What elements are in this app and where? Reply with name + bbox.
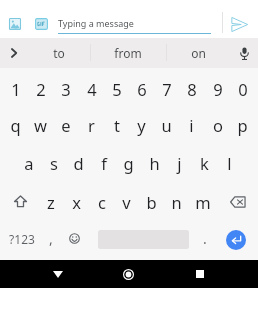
button[interactable]: w [28, 105, 53, 144]
button[interactable]: 5 [104, 69, 129, 108]
staticText: h [149, 152, 160, 174]
button[interactable]: e [53, 105, 78, 144]
staticText: i [189, 114, 194, 136]
staticText: t [114, 114, 120, 136]
button[interactable]: g [116, 143, 141, 182]
button[interactable]: v [114, 182, 139, 221]
button[interactable]: to [27, 38, 90, 68]
staticText: g [123, 152, 134, 174]
staticText: u [161, 114, 172, 136]
staticText: to [53, 45, 65, 61]
staticText: m [195, 191, 211, 213]
staticText: 4 [87, 78, 97, 100]
staticText: 3 [61, 78, 71, 100]
staticText: s [50, 152, 58, 174]
staticText: 9 [213, 78, 223, 100]
staticText: d [73, 152, 84, 174]
button[interactable]: Insert image [5, 14, 25, 34]
staticText: f [101, 152, 107, 174]
staticText: Typing a message [58, 17, 134, 29]
button[interactable]: 8 [179, 69, 204, 108]
button[interactable]: f [91, 143, 116, 182]
button[interactable]: h [142, 143, 167, 182]
staticText: r [88, 114, 95, 136]
button[interactable]: Typing a message [58, 8, 211, 34]
button[interactable]: Insert GIF [31, 14, 51, 34]
button[interactable]: u [154, 105, 179, 144]
button[interactable]: n [164, 182, 189, 221]
button[interactable]: x [64, 182, 89, 221]
staticText: . [203, 229, 207, 248]
button[interactable]: Voice input [231, 38, 258, 68]
button[interactable]: Home [114, 260, 143, 288]
staticText: w [34, 114, 47, 136]
staticText: 2 [36, 78, 46, 100]
staticText: y [137, 114, 146, 136]
button[interactable]: Shift [0, 182, 40, 221]
staticText: c [98, 191, 106, 213]
button[interactable]: k [192, 143, 217, 182]
button[interactable]: , [42, 219, 59, 258]
staticText: from [114, 45, 142, 61]
button[interactable]: r [79, 105, 104, 144]
staticText: x [72, 191, 81, 213]
button[interactable]: Emoji [62, 219, 86, 258]
staticText: l [227, 152, 232, 174]
staticText: e [61, 114, 71, 136]
button[interactable]: 0 [230, 69, 255, 108]
staticText: , [49, 229, 53, 248]
button[interactable]: 2 [28, 69, 53, 108]
button[interactable]: b [139, 182, 164, 221]
button[interactable]: . [196, 219, 213, 258]
button[interactable]: m [190, 182, 215, 221]
staticText: 7 [162, 78, 172, 100]
button[interactable]: 1 [3, 69, 28, 108]
button[interactable]: c [89, 182, 114, 221]
button[interactable]: ?123 [3, 219, 41, 258]
button[interactable]: 4 [79, 69, 104, 108]
staticText: n [171, 191, 182, 213]
button[interactable]: t [104, 105, 129, 144]
staticText: z [47, 191, 55, 213]
staticText: b [146, 191, 157, 213]
button[interactable]: 7 [154, 69, 179, 108]
button[interactable]: Backspace [217, 182, 258, 221]
staticText: p [237, 114, 248, 136]
button[interactable]: More suggestions [0, 38, 27, 68]
button[interactable]: z [38, 182, 63, 221]
button[interactable]: 3 [53, 69, 78, 108]
staticText: 1 [11, 78, 21, 100]
button[interactable]: i [179, 105, 204, 144]
staticText: q [10, 114, 21, 136]
staticText: o [213, 114, 223, 136]
button[interactable]: on [166, 38, 230, 68]
staticText: on [191, 45, 206, 61]
staticText: 8 [187, 78, 197, 100]
staticText: a [24, 152, 34, 174]
staticText: 6 [137, 78, 147, 100]
button[interactable]: l [217, 143, 242, 182]
button[interactable]: o [205, 105, 230, 144]
button[interactable]: Back [43, 260, 72, 288]
button[interactable]: j [167, 143, 192, 182]
staticText: k [200, 152, 209, 174]
button[interactable]: Enter [226, 230, 246, 250]
staticText: 0 [238, 78, 248, 100]
button[interactable]: 9 [205, 69, 230, 108]
button[interactable]: q [3, 105, 28, 144]
button[interactable]: a [16, 143, 41, 182]
button[interactable]: Recents [185, 260, 214, 288]
button[interactable]: s [41, 143, 66, 182]
staticText: v [122, 191, 131, 213]
button[interactable]: 6 [129, 69, 154, 108]
button[interactable]: p [230, 105, 255, 144]
staticText: 5 [112, 78, 122, 100]
staticText: j [177, 152, 182, 174]
button[interactable]: d [66, 143, 91, 182]
button[interactable]: y [129, 105, 154, 144]
button[interactable]: Send [228, 13, 250, 35]
button[interactable]: from [90, 38, 166, 68]
staticText: ?123 [9, 231, 35, 247]
